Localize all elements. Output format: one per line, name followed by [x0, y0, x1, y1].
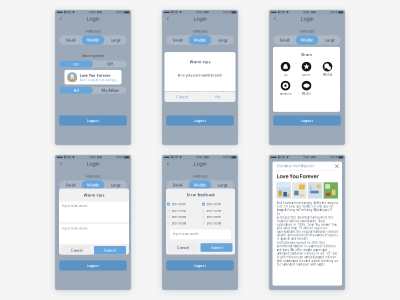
staticText: And looks at him lovingly. Softly she si…: [276, 201, 338, 215]
button[interactable]: Off: [200, 60, 234, 67]
button[interactable]: Middle: [189, 35, 211, 45]
button[interactable]: Back: [271, 15, 278, 22]
staticText: 9:41 AM: [303, 10, 315, 14]
button[interactable]: Error item7: [202, 214, 234, 220]
button[interactable]: Large: [318, 35, 341, 45]
staticText: Love You Forever: [276, 172, 318, 180]
button[interactable]: Off: [93, 60, 127, 67]
staticText: Ariel looks at him lovingly...: [80, 78, 119, 82]
staticText: All: [288, 88, 293, 93]
button[interactable]: All: [166, 87, 200, 94]
button[interactable]: All: [59, 87, 93, 94]
staticText: Voice system: [81, 198, 104, 203]
button[interactable]: All: [166, 232, 200, 239]
button[interactable]: Logout: [59, 260, 127, 271]
staticText: Login: [300, 15, 313, 22]
button[interactable]: Close: [335, 164, 339, 168]
button[interactable]: Error item5: [202, 201, 234, 207]
button[interactable]: Small: [59, 35, 82, 45]
button[interactable]: Off: [200, 205, 234, 212]
button[interactable]: Logout: [59, 115, 127, 126]
button[interactable]: All: [273, 87, 307, 94]
button[interactable]: Wechat: [317, 62, 338, 76]
button[interactable]: Middle: [82, 180, 104, 190]
staticText: Moments: [279, 92, 291, 95]
button[interactable]: Submit: [94, 246, 126, 255]
staticText: 9:41 AM: [89, 155, 101, 159]
button[interactable]: Small: [166, 35, 189, 45]
staticText: Error item6: [207, 209, 222, 212]
button[interactable]: Back: [164, 160, 171, 167]
staticText: Small: [65, 37, 75, 43]
button[interactable]: Back: [57, 160, 64, 167]
button[interactable]: Large: [104, 35, 127, 45]
button[interactable]: My follow: [307, 87, 341, 94]
button[interactable]: Small: [166, 180, 189, 190]
button[interactable]: Love You Forever: [64, 70, 121, 84]
staticText: Login: [193, 15, 206, 22]
button[interactable]: Input some words.: [170, 230, 231, 239]
button[interactable]: Cancel: [62, 246, 91, 255]
staticText: 9:41 AM: [303, 155, 315, 159]
staticText: Large: [110, 37, 120, 43]
button[interactable]: Error item4: [167, 220, 199, 227]
button[interactable]: Yes: [200, 91, 235, 102]
button[interactable]: Error item2: [167, 207, 199, 214]
staticText: Middle: [194, 182, 206, 188]
staticText: Large: [217, 37, 227, 43]
staticText: Sketch: [170, 155, 178, 159]
button[interactable]: Large: [104, 180, 127, 190]
button[interactable]: On: [166, 205, 200, 212]
button[interactable]: Middle: [82, 35, 104, 45]
button[interactable]: Middle: [189, 180, 211, 190]
button[interactable]: Error item6: [202, 207, 234, 214]
button[interactable]: On: [273, 60, 307, 67]
staticText: All: [181, 233, 186, 238]
button[interactable]: Back: [57, 15, 64, 22]
button[interactable]: Large: [211, 35, 234, 45]
button[interactable]: My follow: [200, 87, 234, 94]
button[interactable]: Small: [273, 35, 296, 45]
button[interactable]: Qzone: [296, 62, 317, 76]
button[interactable]: Error item1: [167, 201, 199, 207]
button[interactable]: On: [166, 60, 200, 67]
staticText: Logout: [300, 118, 313, 123]
button[interactable]: Logout: [166, 115, 234, 126]
button[interactable]: Small: [59, 180, 82, 190]
button[interactable]: Cancel: [168, 243, 197, 252]
staticText: Input some words.: [62, 227, 88, 230]
staticText: Small: [172, 182, 182, 188]
button[interactable]: On: [59, 205, 93, 212]
button[interactable]: Middle: [296, 35, 318, 45]
staticText: Yes: [215, 94, 221, 99]
button[interactable]: Off: [307, 60, 341, 67]
staticText: Middle: [194, 37, 206, 43]
button[interactable]: Back: [164, 15, 171, 22]
button[interactable]: Input some words.: [59, 201, 129, 222]
staticText: Voice system: [81, 53, 104, 58]
button[interactable]: Weibo: [296, 81, 317, 95]
staticText: Submit: [210, 245, 222, 250]
button[interactable]: Logout: [273, 115, 341, 126]
button[interactable]: Large: [211, 180, 234, 190]
button[interactable]: QQ: [275, 62, 296, 76]
button[interactable]: Cancel: [164, 91, 200, 102]
staticText: Are you sure want to exit?: [177, 72, 222, 78]
staticText: Sketch: [63, 10, 71, 14]
button[interactable]: Error item3: [167, 214, 199, 220]
button[interactable]: Submit: [200, 243, 232, 252]
staticText: Large: [110, 182, 120, 188]
staticText: Cancel: [70, 248, 82, 253]
button[interactable]: Moments: [275, 81, 296, 95]
button[interactable]: Error item8: [202, 220, 234, 227]
button[interactable]: Logout: [166, 260, 234, 271]
button[interactable]: My follow: [200, 232, 234, 239]
button[interactable]: Input some words.: [59, 224, 129, 244]
button[interactable]: On: [59, 60, 93, 67]
button[interactable]: My follow: [93, 87, 127, 94]
